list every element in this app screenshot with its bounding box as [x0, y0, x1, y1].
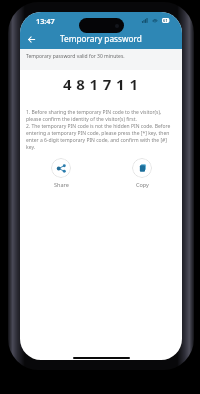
staticText: 13:47 — [36, 16, 55, 26]
staticText: 1. Before sharing the temporary PIN code… — [26, 109, 176, 123]
staticText: 4 8 1 7 1 1 — [63, 74, 139, 94]
staticText: 2. The temporary PIN code is not the hid… — [26, 123, 176, 151]
staticText: Temporary password — [60, 33, 142, 44]
staticText: Share — [54, 181, 69, 188]
staticText: 61 — [163, 18, 168, 23]
button[interactable]: Share — [49, 156, 73, 190]
staticText: Temporary password valid for 30 minutes. — [26, 53, 125, 60]
button[interactable]: Copy — [130, 156, 154, 190]
staticText: Copy — [136, 181, 149, 188]
button[interactable]: Back — [22, 30, 40, 48]
